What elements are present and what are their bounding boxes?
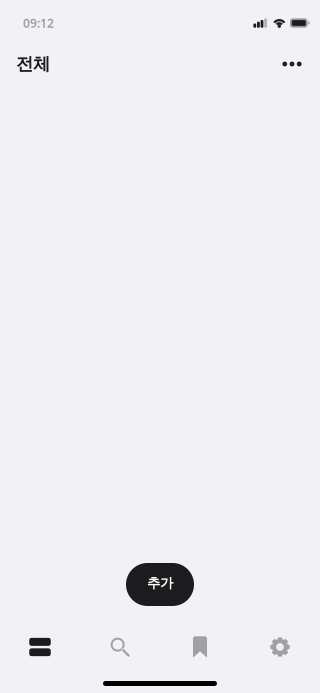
button[interactable]: Bookmarks [160,625,240,669]
staticText: 추가 [147,575,173,591]
staticText: 09:12 [23,15,54,31]
staticText: 전체 [16,53,50,75]
button[interactable]: 추가 [126,563,194,606]
button[interactable]: All [0,625,80,669]
button[interactable]: Settings [240,625,320,669]
button[interactable]: More options [274,46,310,82]
button[interactable]: Search [80,625,160,669]
